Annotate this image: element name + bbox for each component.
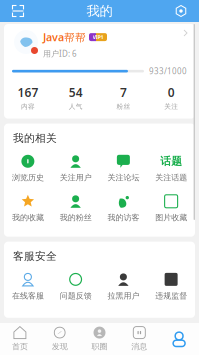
button[interactable]: 0 bbox=[147, 84, 195, 111]
staticText: 话题 bbox=[160, 155, 182, 168]
button[interactable]: 关注论坛 bbox=[99, 149, 147, 189]
staticText: 167 bbox=[17, 84, 38, 100]
staticText: 违规监督 bbox=[155, 291, 187, 301]
button[interactable]: 违规监督 bbox=[147, 267, 195, 307]
button[interactable]: 我的 bbox=[159, 323, 199, 355]
staticText: 关注用户 bbox=[60, 173, 92, 183]
button[interactable]: 关注用户 bbox=[52, 149, 100, 189]
staticText: 我的相关 bbox=[13, 132, 57, 145]
staticText: 用户ID: 6 bbox=[43, 48, 77, 59]
staticText: 粉丝 bbox=[116, 102, 130, 111]
staticText: 图片收藏 bbox=[155, 213, 187, 223]
button[interactable]: 发现 bbox=[40, 323, 80, 355]
staticText: 拉黑用户 bbox=[107, 291, 139, 301]
staticText: 我的 bbox=[86, 3, 112, 19]
staticText: 客服安全 bbox=[13, 250, 57, 263]
button[interactable]: 浏览历史 bbox=[4, 149, 52, 189]
staticText: 职圈 bbox=[91, 342, 107, 351]
button[interactable]: 我的粉丝 bbox=[52, 189, 100, 229]
button[interactable]: 54 bbox=[52, 84, 100, 111]
button[interactable]: 首页 bbox=[0, 323, 40, 355]
staticText: 首页 bbox=[12, 342, 28, 351]
staticText: 关注 bbox=[164, 102, 178, 111]
button[interactable]: 问题反馈 bbox=[52, 267, 100, 307]
staticText: Java帮帮 bbox=[43, 30, 86, 44]
staticText: 人气 bbox=[69, 102, 83, 111]
staticText: 发现 bbox=[52, 342, 68, 351]
button[interactable]: 职圈 bbox=[80, 323, 119, 355]
staticText: VIP1 bbox=[92, 34, 103, 41]
button[interactable]: 在线客服 bbox=[4, 267, 52, 307]
staticText: 浏览历史 bbox=[12, 173, 44, 183]
staticText: 在线客服 bbox=[12, 291, 44, 301]
staticText: 54 bbox=[69, 84, 83, 100]
staticText: 问题反馈 bbox=[60, 291, 92, 301]
button[interactable]: 话题 bbox=[147, 149, 195, 189]
button[interactable]: 7 bbox=[99, 84, 147, 111]
button[interactable]: 拉黑用户 bbox=[99, 267, 147, 307]
button[interactable]: Java帮帮 bbox=[4, 24, 195, 59]
button[interactable]: Settings bbox=[168, 0, 194, 22]
staticText: 关注话题 bbox=[155, 173, 187, 183]
button[interactable]: 我的收藏 bbox=[4, 189, 52, 229]
staticText: 关注论坛 bbox=[107, 173, 139, 183]
staticText: 0 bbox=[168, 84, 175, 100]
staticText: 内容 bbox=[21, 102, 35, 111]
button[interactable]: 我的访客 bbox=[99, 189, 147, 229]
staticText: 消息 bbox=[131, 342, 147, 351]
button[interactable]: 167 bbox=[4, 84, 52, 111]
button[interactable]: 消息 bbox=[119, 323, 159, 355]
staticText: 我的收藏 bbox=[12, 213, 44, 223]
button[interactable]: Scan bbox=[5, 0, 31, 22]
staticText: 933/1000 bbox=[149, 66, 187, 76]
button[interactable]: 图片收藏 bbox=[147, 189, 195, 229]
staticText: 7 bbox=[120, 84, 127, 100]
staticText: 我的粉丝 bbox=[60, 213, 92, 223]
staticText: 我的访客 bbox=[107, 213, 139, 223]
